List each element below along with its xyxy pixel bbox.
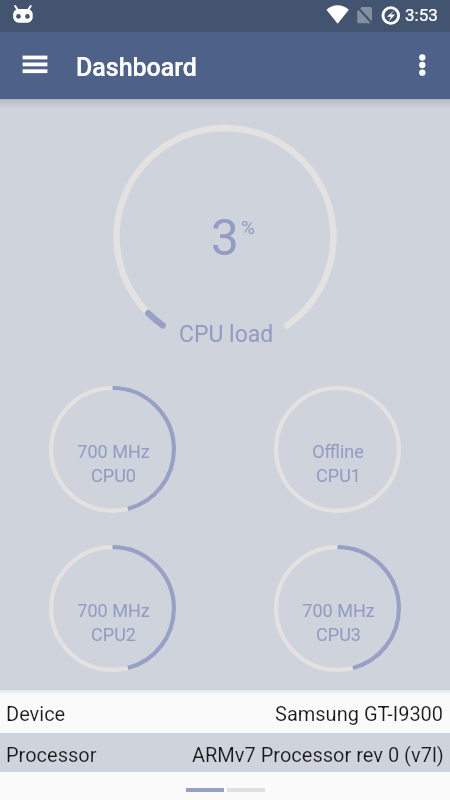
staticText: Offline — [312, 441, 364, 462]
staticText: CPU1 — [316, 465, 361, 486]
staticText: CPU0 — [91, 465, 136, 486]
staticText: Dashboard — [76, 53, 197, 82]
button[interactable]: Open navigation drawer — [12, 41, 58, 87]
button[interactable]: Processor — [0, 733, 450, 772]
staticText: Samsung GT-I9300 — [275, 702, 444, 725]
staticText: 700 MHz — [77, 441, 150, 462]
staticText: CPU3 — [316, 624, 361, 645]
staticText: 3:53 — [405, 5, 438, 25]
staticText: Device — [6, 702, 66, 725]
staticText: CPU load — [179, 321, 274, 348]
staticText: 700 MHz — [77, 600, 150, 621]
button[interactable]: Device — [0, 690, 450, 733]
staticText: Processor — [6, 743, 97, 766]
button[interactable]: More options — [400, 41, 445, 86]
staticText: CPU2 — [91, 624, 136, 645]
staticText: % — [241, 216, 255, 238]
staticText: 700 MHz — [302, 600, 375, 621]
staticText: ARMv7 Processor rev 0 (v7l) — [192, 743, 444, 766]
staticText: 3 — [211, 209, 239, 267]
